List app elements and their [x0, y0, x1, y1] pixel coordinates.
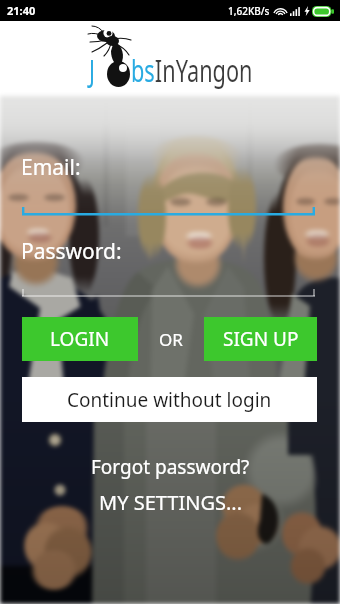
staticText: Yangon [176, 49, 253, 91]
staticText: 1,62KB/s [228, 4, 270, 18]
button[interactable]: SIGN UP [204, 317, 317, 361]
staticText: LOGIN [50, 326, 110, 352]
staticText: SIGN UP [223, 326, 299, 352]
staticText: In [155, 49, 176, 91]
staticText: Forgot password? [91, 454, 250, 480]
staticText: OR [159, 328, 183, 351]
staticText: 21:40 [7, 3, 36, 18]
staticText: Email: [21, 153, 81, 182]
button[interactable]: MY SETTINGS... [0, 489, 340, 515]
staticText: Continue without login [67, 387, 272, 413]
staticText: MY SETTINGS... [99, 489, 242, 515]
staticText: bs [131, 49, 155, 91]
button[interactable]: LOGIN [22, 317, 138, 361]
staticText: J [89, 49, 95, 91]
button[interactable]: Forgot password? [0, 454, 340, 480]
staticText: Password: [21, 237, 122, 266]
button[interactable]: Continue without login [22, 377, 317, 422]
